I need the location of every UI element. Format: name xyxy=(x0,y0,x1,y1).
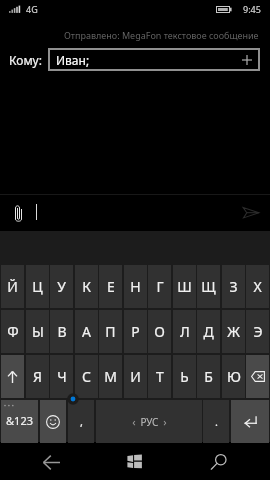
staticText: С xyxy=(82,367,91,386)
button[interactable]: Иван; xyxy=(50,50,258,69)
button[interactable]: Emoji xyxy=(40,400,66,443)
staticText: Ь xyxy=(180,367,189,386)
staticText: У xyxy=(57,277,66,296)
staticText: Б xyxy=(204,367,213,386)
staticText: В xyxy=(57,322,67,341)
staticText: Отправлено: MegaFon текстовое сообщение xyxy=(64,29,259,41)
button[interactable]: Comma xyxy=(68,400,94,443)
button[interactable]: Ч xyxy=(50,355,73,398)
staticText: Н xyxy=(130,277,141,296)
button[interactable]: Ж xyxy=(222,310,245,353)
button[interactable]: Л xyxy=(173,310,196,353)
staticText: Й xyxy=(7,277,18,296)
button[interactable]: Ю xyxy=(222,355,245,398)
staticText: ‹ xyxy=(132,414,136,429)
staticText: О xyxy=(154,322,165,341)
button[interactable]: Space xyxy=(96,400,202,443)
button[interactable]: Щ xyxy=(197,265,220,308)
staticText: РУС xyxy=(140,415,159,429)
button[interactable]: Ы xyxy=(26,310,49,353)
button[interactable]: М xyxy=(99,355,122,398)
staticText: Л xyxy=(180,322,190,341)
button[interactable]: С xyxy=(75,355,98,398)
staticText: Ф xyxy=(7,322,19,341)
button[interactable]: Ь xyxy=(173,355,196,398)
staticText: Е xyxy=(107,277,115,296)
staticText: Щ xyxy=(201,277,216,296)
button[interactable]: Я xyxy=(26,355,49,398)
button[interactable]: А xyxy=(75,310,98,353)
button[interactable]: Enter xyxy=(231,400,269,443)
button[interactable]: Period xyxy=(203,400,229,443)
button[interactable]: Э xyxy=(246,310,269,353)
staticText: Ш xyxy=(177,277,192,296)
staticText: , xyxy=(80,414,83,429)
staticText: И xyxy=(130,367,141,386)
staticText: Ж xyxy=(227,322,240,341)
button[interactable]: Р xyxy=(124,310,147,353)
staticText: Кому: xyxy=(9,52,42,68)
button[interactable]: Start xyxy=(120,450,150,474)
staticText: Я xyxy=(33,367,42,386)
button[interactable]: Д xyxy=(197,310,220,353)
button[interactable]: Ф xyxy=(1,310,24,353)
staticText: Э xyxy=(253,322,263,341)
button[interactable]: Х xyxy=(246,265,269,308)
button[interactable]: Send xyxy=(238,200,264,226)
button[interactable]: Shift xyxy=(1,355,24,398)
staticText: Г xyxy=(156,277,164,296)
staticText: › xyxy=(163,414,167,429)
staticText: Р xyxy=(131,322,140,341)
staticText: Ч xyxy=(57,367,67,386)
button[interactable]: Backspace xyxy=(246,355,269,398)
staticText: 4G xyxy=(26,3,38,15)
staticText: К xyxy=(82,277,91,296)
button[interactable]: Ш xyxy=(173,265,196,308)
staticText: . xyxy=(215,414,218,429)
button[interactable]: Search xyxy=(206,450,236,474)
button[interactable]: У xyxy=(50,265,73,308)
staticText: &123 xyxy=(6,413,33,428)
staticText: 9:45 xyxy=(243,3,261,15)
button[interactable]: Е xyxy=(99,265,122,308)
button[interactable]: Б xyxy=(197,355,220,398)
button[interactable]: И xyxy=(124,355,147,398)
staticText: М xyxy=(104,367,117,386)
button[interactable]: Back xyxy=(34,450,68,474)
button[interactable]: Н xyxy=(124,265,147,308)
staticText: Ю xyxy=(227,367,241,386)
staticText: Д xyxy=(203,322,214,341)
button[interactable]: Symbols xyxy=(1,400,38,443)
staticText: З xyxy=(229,277,238,296)
button[interactable]: Г xyxy=(148,265,171,308)
button[interactable]: Ц xyxy=(26,265,49,308)
staticText: Ц xyxy=(32,277,43,296)
staticText: Ы xyxy=(32,322,44,341)
staticText: А xyxy=(82,322,91,341)
staticText: П xyxy=(105,322,116,341)
button[interactable]: О xyxy=(148,310,171,353)
button[interactable]: К xyxy=(75,265,98,308)
button[interactable]: З xyxy=(222,265,245,308)
staticText: Т xyxy=(156,367,164,386)
staticText: Иван; xyxy=(56,52,90,68)
button[interactable]: П xyxy=(99,310,122,353)
button[interactable]: Й xyxy=(1,265,24,308)
button[interactable]: Т xyxy=(148,355,171,398)
button[interactable]: В xyxy=(50,310,73,353)
button[interactable]: Attach xyxy=(8,199,28,225)
staticText: Х xyxy=(253,277,262,296)
button[interactable]: Add contact xyxy=(236,50,258,69)
